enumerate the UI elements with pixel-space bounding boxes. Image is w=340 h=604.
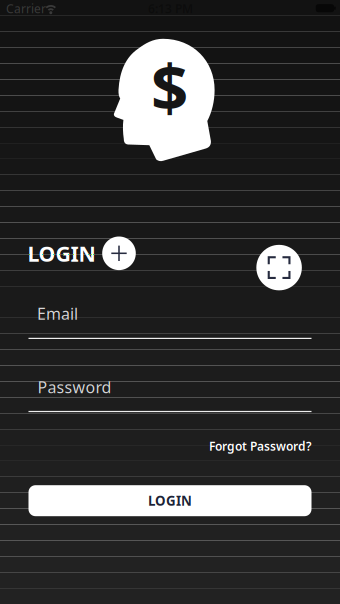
staticText: Forgot Password? bbox=[209, 438, 312, 454]
staticText: Carrier bbox=[6, 0, 46, 16]
staticText: LOGIN bbox=[148, 492, 192, 509]
button[interactable]: Scan bbox=[256, 245, 302, 290]
button[interactable]: Sign up bbox=[102, 236, 136, 270]
staticText: $ bbox=[151, 42, 188, 129]
button[interactable]: Forgot Password? bbox=[209, 438, 312, 454]
button[interactable]: LOGIN bbox=[28, 485, 311, 516]
staticText: Email bbox=[37, 303, 78, 324]
staticText: Password bbox=[37, 376, 111, 398]
staticText: LOGIN bbox=[27, 239, 95, 268]
